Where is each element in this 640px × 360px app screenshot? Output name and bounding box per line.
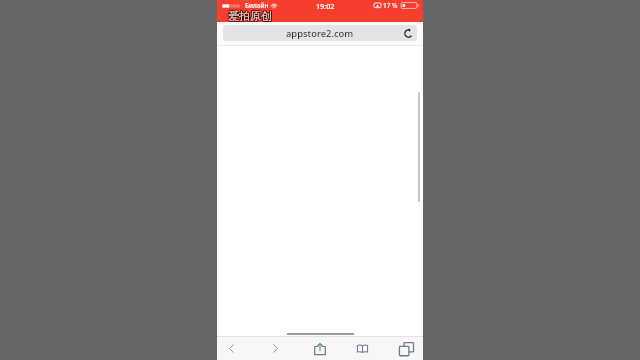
button[interactable]: Reload (403, 28, 414, 39)
staticText: 17 % (383, 1, 398, 10)
staticText: 爱拍原创 (229, 9, 273, 23)
button[interactable]: Forward (258, 337, 292, 360)
staticText: 爱拍原创 (227, 9, 271, 23)
staticText: 19:02 (316, 1, 335, 11)
staticText: 爱拍原创 (228, 9, 272, 23)
staticText: 爱拍原创 (227, 8, 271, 22)
staticText: Билайн (245, 1, 269, 10)
button[interactable]: Share (303, 337, 337, 360)
staticText: 爱拍原创 (228, 10, 272, 24)
staticText: 爱拍原创 (227, 10, 271, 24)
staticText: 爱拍原创 (229, 8, 273, 22)
staticText: 爱拍原创 (229, 10, 273, 24)
button[interactable]: appstore2.com (223, 25, 417, 41)
button[interactable]: Back (214, 337, 248, 360)
staticText: 爱拍原创 (228, 8, 272, 22)
staticText: appstore2.com (286, 27, 354, 40)
button[interactable]: Tabs (389, 337, 423, 360)
button[interactable]: Bookmarks (345, 337, 379, 360)
